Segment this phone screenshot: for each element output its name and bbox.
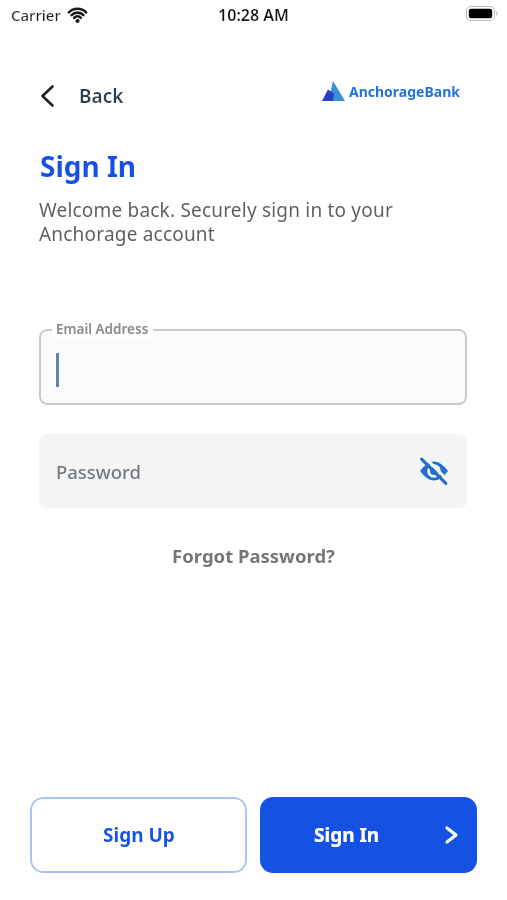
button[interactable]: Back bbox=[36, 78, 129, 114]
staticText: Sign In bbox=[40, 147, 137, 185]
staticText: AnchorageBank bbox=[349, 82, 460, 101]
button[interactable] bbox=[419, 456, 449, 486]
staticText: 10:28 AM bbox=[0, 4, 507, 26]
staticText: Back bbox=[79, 83, 124, 109]
staticText: Welcome back. Securely sign in to your A… bbox=[39, 197, 393, 246]
staticText: Carrier bbox=[11, 5, 61, 25]
button[interactable] bbox=[39, 329, 467, 405]
staticText: Sign Up bbox=[103, 822, 175, 848]
button[interactable]: Password bbox=[39, 434, 467, 508]
button[interactable]: Forgot Password? bbox=[0, 543, 507, 568]
button[interactable]: Sign Up bbox=[30, 797, 247, 873]
staticText: Email Address bbox=[56, 320, 149, 338]
button[interactable]: Sign In bbox=[260, 797, 477, 873]
staticText: Password bbox=[56, 459, 142, 484]
staticText: Sign In bbox=[314, 822, 380, 848]
